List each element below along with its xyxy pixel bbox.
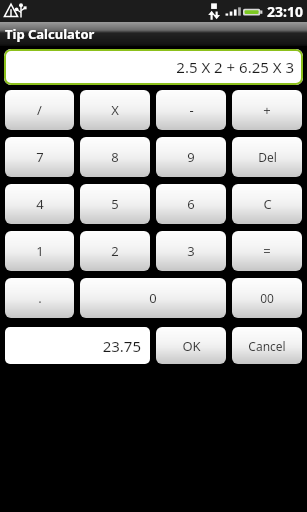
button[interactable]: 1 — [5, 231, 74, 271]
button[interactable]: 2 — [80, 231, 150, 271]
button[interactable]: 5 — [80, 184, 150, 224]
button[interactable]: + — [232, 90, 302, 130]
button[interactable]: C — [232, 184, 302, 224]
other: Warning — [2, 1, 20, 21]
staticText: Tip Calculator — [5, 25, 95, 43]
button[interactable]: / — [5, 90, 74, 130]
button[interactable]: 23.75 — [5, 327, 150, 364]
button[interactable]: X — [80, 90, 150, 130]
staticText: OK — [182, 337, 201, 355]
button[interactable]: 2.5 X 2 + 6.25 X 3 — [4, 49, 303, 85]
staticText: X — [111, 101, 119, 119]
staticText: - — [189, 101, 194, 119]
staticText: 2.5 X 2 + 6.25 X 3 — [176, 57, 294, 77]
staticText: 7 — [36, 148, 44, 166]
staticText: 1 — [36, 242, 44, 260]
button[interactable]: 8 — [80, 137, 150, 177]
button[interactable]: 7 — [5, 137, 74, 177]
staticText: 3 — [187, 242, 195, 260]
staticText: . — [38, 289, 42, 307]
staticText: / — [37, 101, 42, 119]
staticText: Del — [258, 149, 277, 165]
button[interactable]: OK — [156, 327, 226, 364]
button[interactable]: 00 — [232, 278, 302, 318]
staticText: 6 — [187, 195, 195, 213]
button[interactable]: 9 — [156, 137, 226, 177]
staticText: 23.75 — [102, 336, 141, 356]
staticText: 9 — [187, 148, 195, 166]
button[interactable]: - — [156, 90, 226, 130]
staticText: C — [263, 195, 272, 213]
button[interactable]: 4 — [5, 184, 74, 224]
button[interactable]: 6 — [156, 184, 226, 224]
staticText: 23:10 — [267, 2, 303, 21]
staticText: 0 — [149, 289, 157, 307]
button[interactable]: 0 — [80, 278, 226, 318]
staticText: 5 — [111, 195, 119, 213]
staticText: 8 — [111, 148, 119, 166]
button[interactable]: 3 — [156, 231, 226, 271]
button[interactable]: = — [232, 231, 302, 271]
staticText: 00 — [260, 290, 274, 306]
staticText: 2 — [111, 242, 119, 260]
button[interactable]: Cancel — [232, 327, 302, 364]
button[interactable]: Del — [232, 137, 302, 177]
staticText: + — [263, 101, 271, 119]
button[interactable]: . — [5, 278, 74, 318]
staticText: 4 — [36, 195, 44, 213]
staticText: = — [263, 242, 271, 260]
staticText: Cancel — [248, 338, 286, 354]
